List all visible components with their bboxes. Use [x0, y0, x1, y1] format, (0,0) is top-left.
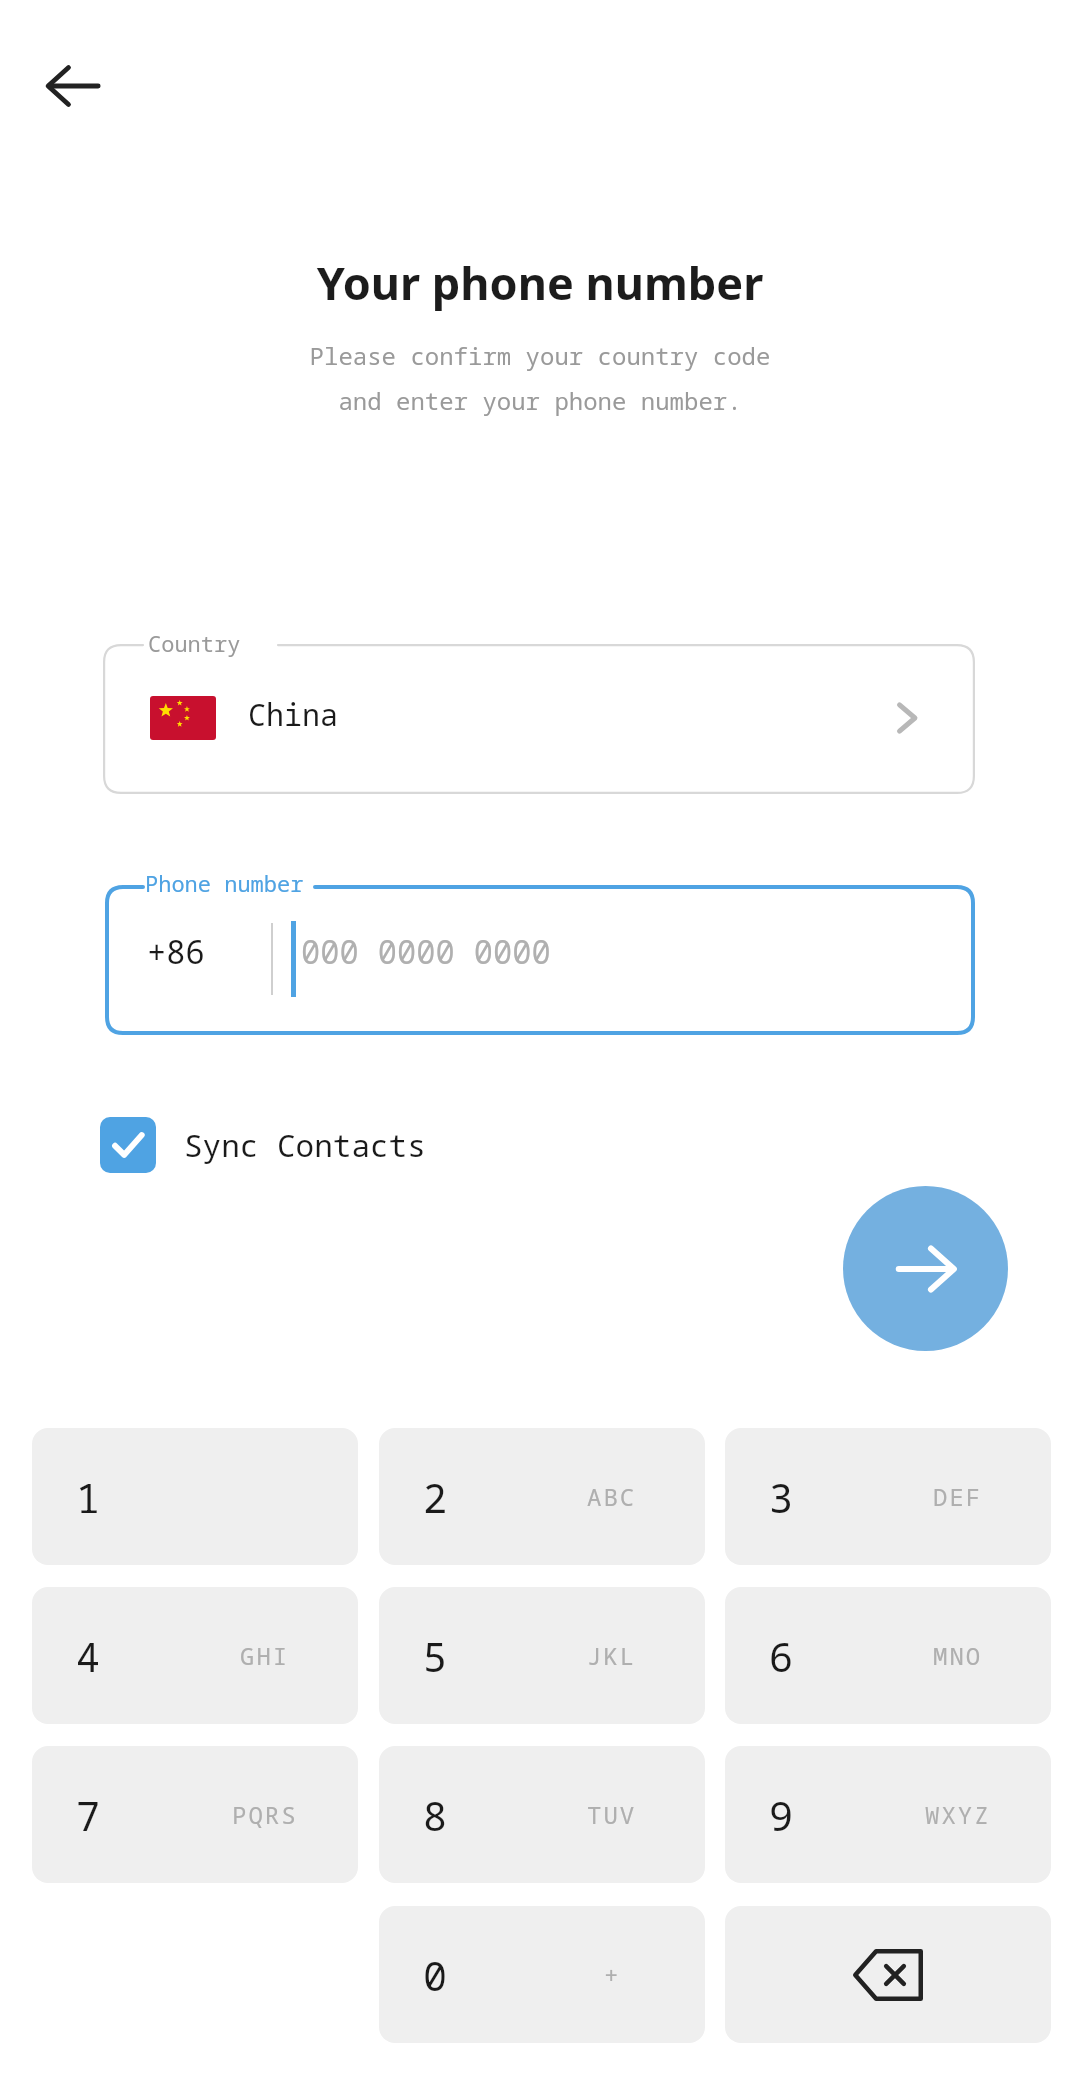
button[interactable]: 4	[32, 1587, 358, 1724]
button[interactable]: 5	[379, 1587, 705, 1724]
button[interactable]: 3	[725, 1428, 1051, 1565]
staticText: TUV	[587, 1798, 637, 1831]
staticText: Sync Contacts	[184, 1124, 426, 1166]
staticText: JKL	[587, 1639, 637, 1672]
staticText: DEF	[933, 1480, 983, 1513]
staticText: +86	[147, 930, 205, 974]
button[interactable]: 0	[379, 1906, 705, 2043]
staticText: Please confirm your country code	[0, 339, 1080, 372]
staticText: 6	[769, 1629, 793, 1683]
staticText: GHI	[240, 1639, 290, 1672]
staticText: 0	[423, 1948, 447, 2002]
button[interactable]: 8	[379, 1746, 705, 1883]
button[interactable]: Sync Contacts	[100, 1105, 426, 1185]
staticText: 7	[76, 1788, 100, 1842]
staticText: 2	[423, 1470, 447, 1524]
button[interactable]: 9	[725, 1746, 1051, 1883]
button[interactable]: Next	[843, 1186, 1008, 1351]
staticText: 9	[769, 1788, 793, 1842]
staticText: Your phone number	[0, 252, 1080, 313]
staticText: Country	[148, 628, 241, 658]
staticText: PQRS	[232, 1798, 298, 1831]
button[interactable]: 7	[32, 1746, 358, 1883]
staticText: 4	[76, 1629, 100, 1683]
button[interactable]: 1	[32, 1428, 358, 1565]
staticText: 8	[423, 1788, 447, 1842]
staticText: 5	[423, 1629, 447, 1683]
staticText: WXYZ	[925, 1798, 991, 1831]
button[interactable]: 6	[725, 1587, 1051, 1724]
staticText: Phone number	[145, 868, 304, 898]
button[interactable]: +86	[105, 885, 975, 1035]
staticText: 3	[769, 1470, 793, 1524]
staticText: China	[248, 694, 338, 735]
button[interactable]: 2	[379, 1428, 705, 1565]
staticText: 1	[76, 1470, 100, 1524]
staticText: ABC	[587, 1480, 637, 1513]
staticText: 000 0000 0000	[301, 930, 551, 974]
button[interactable]: Back	[34, 47, 112, 125]
staticText: +	[604, 1958, 621, 1991]
staticText: MNO	[933, 1639, 983, 1672]
staticText: and enter your phone number.	[0, 384, 1080, 417]
button[interactable]: China	[103, 644, 975, 794]
button[interactable]: Backspace	[725, 1906, 1051, 2043]
